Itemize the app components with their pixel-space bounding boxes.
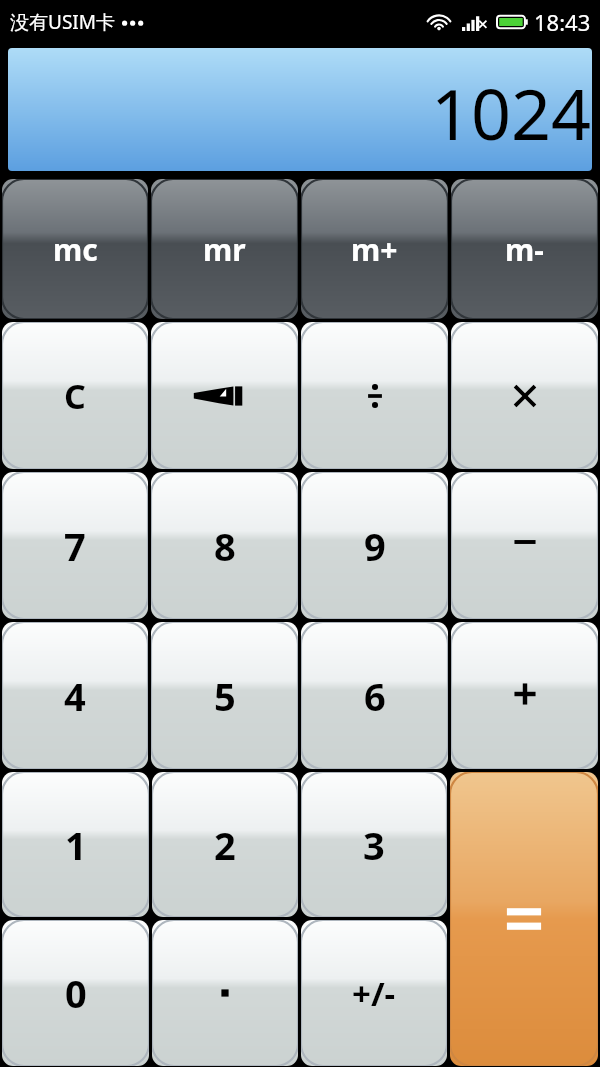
button[interactable]: 1 [2, 772, 149, 917]
button[interactable]: m+ [301, 179, 448, 319]
staticText: 2 [214, 819, 236, 871]
button[interactable]: Minus [451, 472, 598, 619]
staticText: 1 [65, 819, 87, 871]
button[interactable]: 2 [152, 772, 298, 917]
button[interactable]: 4 [2, 622, 148, 769]
staticText: C [64, 373, 86, 419]
button[interactable]: C [2, 322, 148, 469]
staticText: 3 [363, 819, 385, 871]
button[interactable]: Backspace [151, 322, 298, 469]
staticText: mr [203, 229, 246, 270]
button[interactable]: 7 [2, 472, 148, 619]
staticText: mc [53, 229, 98, 270]
staticText: 8 [214, 520, 236, 572]
staticText: 5 [214, 670, 236, 722]
button[interactable]: 5 [151, 622, 298, 769]
staticText: 7 [64, 520, 86, 572]
staticText: 18:43 [534, 7, 591, 37]
button[interactable]: Divide [301, 322, 448, 469]
button[interactable]: 1024 [8, 48, 592, 171]
staticText: 4 [64, 670, 86, 722]
button[interactable]: 8 [151, 472, 298, 619]
button[interactable]: Multiply [451, 322, 598, 469]
button[interactable]: mr [151, 179, 298, 319]
staticText: m+ [351, 229, 398, 270]
button[interactable]: m- [451, 179, 598, 319]
button[interactable]: Equals [450, 772, 598, 1066]
staticText: 1024 [431, 65, 592, 160]
button[interactable]: Decimal point [152, 920, 298, 1066]
staticText: 没有USIM卡 [10, 9, 115, 35]
button[interactable]: Plus minus sign [301, 920, 447, 1066]
staticText: 6 [364, 670, 386, 722]
staticText: 0 [65, 967, 87, 1019]
button[interactable]: 6 [301, 622, 448, 769]
staticText: +/- [352, 971, 396, 1016]
button[interactable]: 3 [301, 772, 447, 917]
staticText: m- [505, 229, 544, 270]
button[interactable]: mc [2, 179, 148, 319]
button[interactable]: 0 [2, 920, 149, 1066]
button[interactable]: Plus [451, 622, 598, 769]
staticText: 9 [364, 520, 386, 572]
button[interactable]: 9 [301, 472, 448, 619]
